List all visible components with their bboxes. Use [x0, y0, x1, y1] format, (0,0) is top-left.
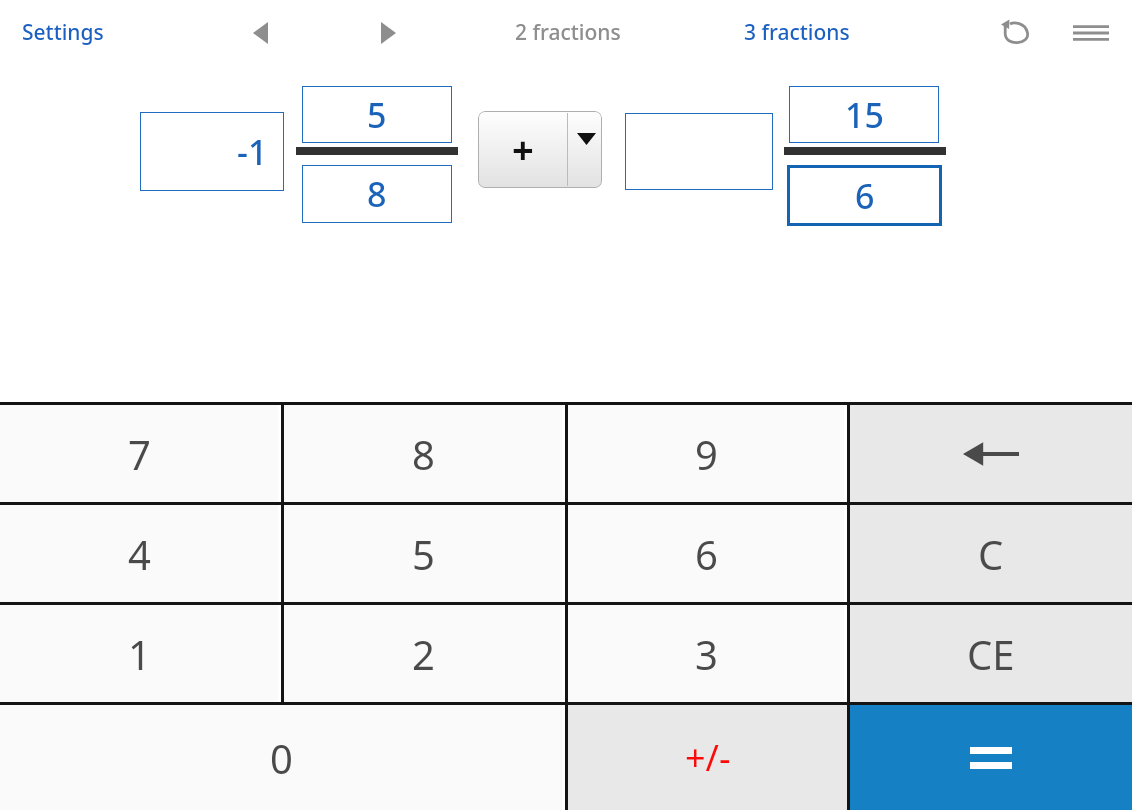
staticText: CE [967, 627, 1015, 681]
button[interactable]: Previous [242, 15, 278, 51]
button[interactable]: Undo [994, 12, 1038, 54]
staticText: 6 [695, 527, 718, 581]
button[interactable]: -1 [140, 112, 284, 191]
button[interactable]: Equals [850, 705, 1132, 810]
button[interactable]: +/- [568, 705, 847, 810]
staticText: 2 fractions [515, 18, 621, 47]
staticText: + [512, 123, 534, 175]
button[interactable]: 5 [284, 505, 562, 602]
staticText: +/- [685, 733, 731, 782]
staticText: -1 [237, 129, 268, 175]
button[interactable]: 0 [0, 705, 562, 810]
staticText: C [978, 527, 1004, 581]
button[interactable]: 5 [302, 86, 452, 143]
button[interactable]: 15 [789, 86, 939, 143]
button[interactable]: 4 [0, 505, 278, 602]
button[interactable]: CE [850, 605, 1132, 702]
staticText: 1 [128, 627, 151, 681]
button[interactable]: 8 [302, 165, 452, 223]
button[interactable]: 3 [568, 605, 844, 702]
button[interactable]: 1 [0, 605, 278, 702]
button[interactable]: Next [370, 15, 406, 51]
staticText: 4 [128, 527, 151, 581]
staticText: 7 [128, 427, 151, 481]
button[interactable]: C [850, 505, 1132, 602]
staticText: 8 [412, 427, 435, 481]
staticText: Settings [22, 18, 104, 47]
staticText: 2 [412, 627, 435, 681]
staticText: 6 [855, 173, 875, 219]
staticText: 15 [845, 92, 884, 138]
button[interactable]: 9 [568, 405, 844, 502]
button[interactable]: Menu [1066, 12, 1116, 54]
button[interactable] [625, 113, 773, 190]
button[interactable]: 6 [568, 505, 844, 602]
button[interactable]: 2 fractions [515, 11, 665, 53]
button[interactable]: 7 [0, 405, 278, 502]
button[interactable]: 2 [284, 605, 562, 702]
button[interactable]: + [478, 111, 602, 188]
staticText: 5 [367, 92, 387, 138]
button[interactable]: 6 [787, 165, 942, 226]
button[interactable]: Settings [22, 11, 152, 53]
staticText: 3 fractions [744, 18, 850, 47]
button[interactable]: Backspace [850, 405, 1132, 502]
staticText: 5 [412, 527, 435, 581]
staticText: 8 [367, 171, 387, 217]
button[interactable]: 8 [284, 405, 562, 502]
staticText: 9 [695, 427, 718, 481]
button[interactable]: 3 fractions [744, 11, 894, 53]
staticText: 3 [695, 627, 718, 681]
staticText: 0 [270, 731, 293, 785]
